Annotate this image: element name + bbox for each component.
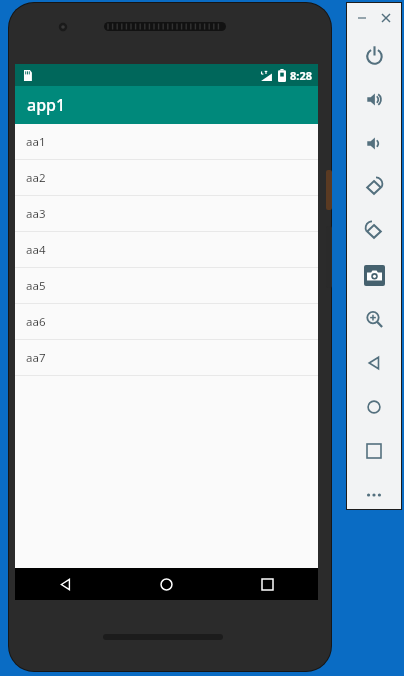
button[interactable]: Overview bbox=[358, 435, 390, 467]
button[interactable]: Zoom bbox=[358, 303, 390, 335]
button[interactable]: aa4 bbox=[15, 232, 318, 268]
button[interactable]: aa1 bbox=[15, 124, 318, 160]
button[interactable]: Volume down bbox=[358, 127, 390, 159]
button[interactable]: Back bbox=[15, 568, 116, 600]
button[interactable]: Power bbox=[358, 39, 390, 71]
staticText: aa3 bbox=[26, 206, 46, 222]
staticText: aa4 bbox=[26, 242, 46, 258]
button[interactable]: Minimize bbox=[353, 9, 371, 27]
button[interactable]: Home bbox=[358, 391, 390, 423]
staticText: aa5 bbox=[26, 278, 46, 294]
button[interactable]: aa2 bbox=[15, 160, 318, 196]
button[interactable]: Rotate left bbox=[358, 171, 390, 203]
staticText: aa1 bbox=[26, 134, 46, 150]
button[interactable]: app1 bbox=[15, 86, 318, 124]
button[interactable]: Back bbox=[358, 347, 390, 379]
staticText: aa6 bbox=[26, 314, 46, 330]
button[interactable]: Close bbox=[377, 9, 395, 27]
staticText: aa2 bbox=[26, 170, 46, 186]
staticText: 8:28 bbox=[290, 68, 312, 83]
button[interactable]: aa7 bbox=[15, 340, 318, 376]
button[interactable]: More bbox=[358, 479, 390, 511]
button[interactable]: Home bbox=[116, 568, 217, 600]
staticText: aa7 bbox=[26, 350, 46, 366]
button[interactable]: Rotate right bbox=[358, 215, 390, 247]
button[interactable]: Take screenshot bbox=[358, 259, 390, 291]
button[interactable]: Volume up bbox=[358, 83, 390, 115]
staticText: app1 bbox=[27, 94, 66, 116]
button[interactable]: Recent apps bbox=[217, 568, 318, 600]
button[interactable]: aa6 bbox=[15, 304, 318, 340]
button[interactable]: aa3 bbox=[15, 196, 318, 232]
button[interactable]: aa5 bbox=[15, 268, 318, 304]
